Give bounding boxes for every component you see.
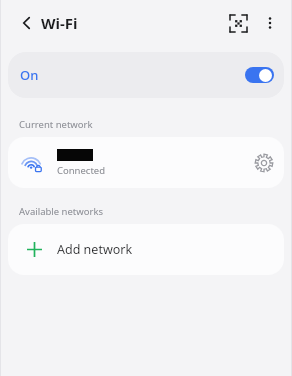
staticText: Connected <box>57 164 106 177</box>
button[interactable]: Add network <box>8 224 284 275</box>
button[interactable]: Network settings <box>245 144 283 182</box>
staticText: On <box>20 66 39 84</box>
staticText: Wi-Fi <box>41 13 78 33</box>
staticText: Available networks <box>19 205 103 218</box>
button[interactable]: More options <box>256 9 284 37</box>
staticText: Add network <box>57 241 133 258</box>
staticText: Current network <box>19 118 93 131</box>
button[interactable]: Back <box>12 8 42 38</box>
button[interactable]: Scan QR code <box>224 9 252 37</box>
button[interactable]: On <box>8 52 284 98</box>
button[interactable]: Connected <box>8 137 284 188</box>
